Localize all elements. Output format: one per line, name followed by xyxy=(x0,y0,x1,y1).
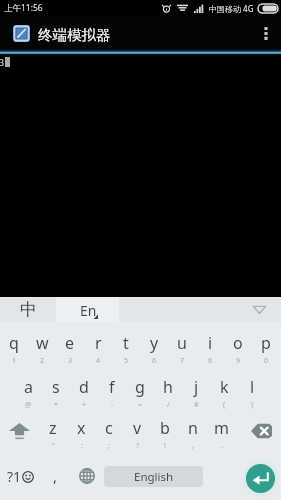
staticText: f xyxy=(109,376,115,398)
staticText: 4 xyxy=(96,356,101,366)
staticText: + xyxy=(82,400,87,410)
staticText: u xyxy=(177,332,187,354)
staticText: q xyxy=(9,332,19,354)
button[interactable]: English xyxy=(104,466,203,487)
staticText: 9 xyxy=(236,356,241,366)
staticText: # xyxy=(194,400,199,410)
button[interactable]: Enter xyxy=(242,460,279,497)
staticText: m xyxy=(214,417,229,439)
staticText: s xyxy=(52,376,60,398)
staticText: g xyxy=(135,376,145,398)
staticText: , xyxy=(53,466,58,486)
button[interactable]: m xyxy=(207,410,235,452)
button[interactable]: r xyxy=(84,322,112,366)
staticText: c xyxy=(105,417,113,439)
staticText: 0 xyxy=(264,356,269,366)
staticText: v xyxy=(133,417,142,439)
staticText: English xyxy=(134,469,174,485)
button[interactable]: b xyxy=(151,410,179,452)
button[interactable]: v xyxy=(123,410,151,452)
staticText: 3 xyxy=(0,57,5,69)
staticText: . xyxy=(221,441,223,451)
button[interactable]: f xyxy=(98,366,126,410)
staticText: En xyxy=(80,301,97,320)
staticText: h xyxy=(163,376,173,398)
staticText: , xyxy=(192,441,194,451)
staticText: " xyxy=(52,441,55,451)
button[interactable]: 中 xyxy=(0,297,56,322)
staticText: = xyxy=(138,400,143,410)
button[interactable]: q xyxy=(0,322,28,366)
staticText: y xyxy=(150,332,159,354)
button[interactable]: z xyxy=(39,410,67,452)
staticText: @ xyxy=(25,400,32,410)
staticText: ( xyxy=(223,400,226,410)
button[interactable]: n xyxy=(179,410,207,452)
staticText: ? xyxy=(136,441,140,451)
staticText: 中国移动 4G xyxy=(209,3,254,14)
staticText: n xyxy=(188,417,198,439)
button[interactable]: ?1 xyxy=(0,452,41,500)
staticText: w xyxy=(36,332,49,354)
button[interactable]: o xyxy=(224,322,252,366)
button[interactable]: d xyxy=(70,366,98,410)
button[interactable]: Backspace xyxy=(241,410,281,452)
button[interactable]: i xyxy=(196,322,224,366)
button[interactable]: Hide keyboard xyxy=(237,297,281,322)
staticText: * xyxy=(54,400,58,410)
staticText: 6 xyxy=(152,356,157,366)
button[interactable]: j xyxy=(182,366,210,410)
button[interactable]: More options xyxy=(251,16,281,49)
staticText: e xyxy=(65,332,75,354)
staticText: ) xyxy=(251,400,254,410)
staticText: 3 xyxy=(68,356,73,366)
staticText: 上午11:56 xyxy=(4,2,43,14)
staticText: r xyxy=(95,332,102,354)
button[interactable]: App icon xyxy=(13,25,30,42)
button[interactable]: k xyxy=(210,366,238,410)
staticText: 5 xyxy=(124,356,129,366)
staticText: 终端模拟器 xyxy=(38,26,111,44)
button[interactable]: p xyxy=(252,322,280,366)
button[interactable]: y xyxy=(140,322,168,366)
button[interactable]: x xyxy=(67,410,95,452)
button[interactable]: e xyxy=(56,322,84,366)
staticText: x xyxy=(77,417,86,439)
staticText: 1 xyxy=(12,356,17,366)
staticText: ?1 xyxy=(7,467,22,486)
staticText: ; xyxy=(108,441,110,451)
staticText: k xyxy=(220,376,229,398)
button[interactable]: Shift xyxy=(0,410,39,452)
staticText: ! xyxy=(164,441,166,451)
staticText: b xyxy=(160,417,170,439)
button[interactable]: s xyxy=(42,366,70,410)
staticText: i xyxy=(208,332,213,354)
button[interactable]: Switch language xyxy=(69,452,104,500)
button[interactable]: c xyxy=(95,410,123,452)
staticText: - xyxy=(111,400,114,410)
staticText: t xyxy=(123,332,129,354)
button[interactable]: , xyxy=(41,452,69,500)
staticText: 中 xyxy=(20,299,37,320)
staticText: z xyxy=(49,417,57,439)
button[interactable]: t xyxy=(112,322,140,366)
staticText: a xyxy=(24,376,33,398)
staticText: / xyxy=(167,400,170,410)
button[interactable]: a xyxy=(14,366,42,410)
button[interactable]: En xyxy=(56,297,119,322)
staticText: j xyxy=(194,376,199,398)
staticText: l xyxy=(250,376,255,398)
staticText: 2 xyxy=(40,356,45,366)
staticText: o xyxy=(233,332,243,354)
staticText: 8 xyxy=(208,356,213,366)
button[interactable]: u xyxy=(168,322,196,366)
staticText: p xyxy=(261,332,271,354)
staticText: 7 xyxy=(180,356,185,366)
button[interactable]: g xyxy=(126,366,154,410)
staticText: d xyxy=(79,376,89,398)
button[interactable]: h xyxy=(154,366,182,410)
button[interactable]: w xyxy=(28,322,56,366)
button[interactable]: l xyxy=(238,366,266,410)
staticText: : xyxy=(81,441,83,451)
